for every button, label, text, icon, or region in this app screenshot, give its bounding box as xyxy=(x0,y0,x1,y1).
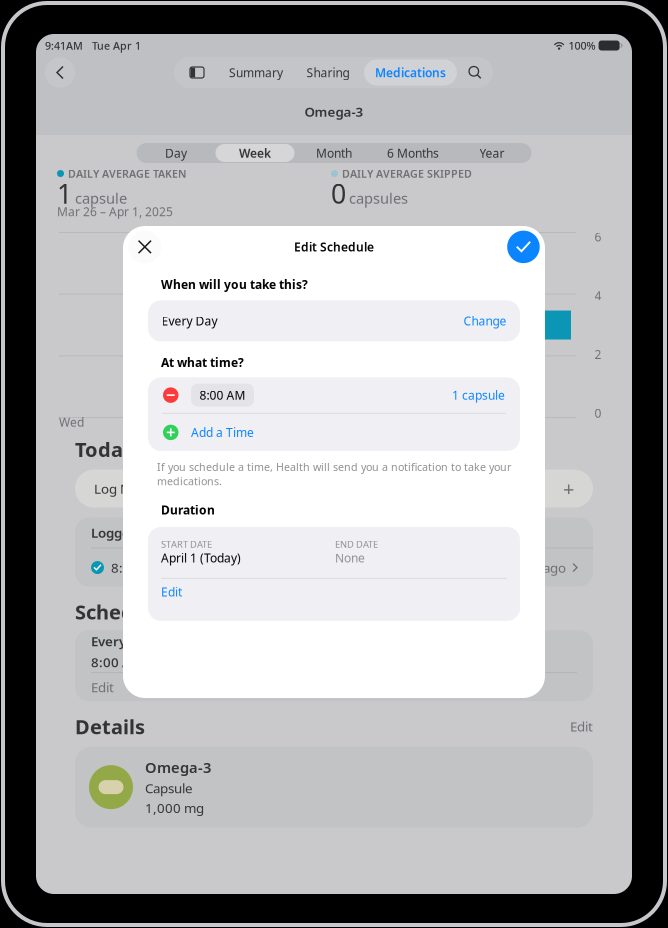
staticText: 1 capsule xyxy=(452,387,505,403)
staticText: + xyxy=(563,475,574,502)
staticText: Edit xyxy=(91,678,114,696)
button[interactable]: Week xyxy=(215,144,294,162)
button[interactable]: Month xyxy=(294,144,373,162)
staticText: 8:00 AM xyxy=(91,653,143,671)
staticText: When will you take this? xyxy=(161,276,308,292)
staticText: capsules xyxy=(349,188,408,208)
staticText: At what time? xyxy=(161,354,244,370)
staticText: 100% xyxy=(566,38,599,53)
staticText: Log New Medication xyxy=(94,480,218,497)
button[interactable]: Medications xyxy=(364,59,457,85)
staticText: Tue Apr 1 xyxy=(83,38,141,53)
staticText: Omega-3 xyxy=(304,103,363,120)
staticText: If you schedule a time, Health will send… xyxy=(157,460,511,488)
staticText: Capsule xyxy=(145,779,193,797)
staticText: Mar 26 – Apr 1, 2025 xyxy=(57,203,173,219)
staticText: April 1 (Today) xyxy=(161,550,241,566)
staticText: 1,000 mg xyxy=(145,799,204,817)
button[interactable]: Summary xyxy=(220,59,292,85)
staticText: Edit Schedule xyxy=(294,239,374,255)
staticText: 0 xyxy=(594,405,601,421)
staticText: Edit xyxy=(570,717,593,735)
button[interactable]: Sidebar xyxy=(174,59,220,85)
staticText: capsule xyxy=(75,188,127,208)
staticText: 1h ago xyxy=(524,559,566,576)
button[interactable]: Done xyxy=(507,231,540,263)
staticText: Schedule xyxy=(75,599,165,625)
staticText: 0 xyxy=(331,176,346,211)
staticText: START DATE xyxy=(161,538,212,550)
staticText: Omega-3 xyxy=(145,758,211,777)
staticText: Add a Time xyxy=(191,424,254,440)
staticText: 4 xyxy=(594,288,601,304)
staticText: END DATE xyxy=(335,538,378,550)
staticText: 6 Months xyxy=(387,145,439,161)
staticText: Every Day xyxy=(91,632,154,650)
button[interactable]: Sharing xyxy=(292,59,364,85)
staticText: Medications xyxy=(375,64,446,80)
button[interactable]: Remove time xyxy=(163,387,178,403)
staticText: Sharing xyxy=(306,64,349,80)
staticText: Details xyxy=(75,713,145,740)
button[interactable]: 8:00 AM xyxy=(191,384,254,407)
button[interactable]: Year xyxy=(452,144,531,162)
button[interactable]: Edit xyxy=(148,579,520,621)
button[interactable]: Close xyxy=(128,230,161,263)
staticText: Wed xyxy=(59,414,84,430)
staticText: Year xyxy=(479,145,504,161)
staticText: Edit xyxy=(161,584,182,600)
staticText: None xyxy=(335,550,365,566)
staticText: 2 xyxy=(594,346,601,362)
button[interactable]: Every Day xyxy=(148,300,520,341)
staticText: Week xyxy=(239,145,271,161)
staticText: 8:00 AM xyxy=(111,559,163,576)
staticText: Day xyxy=(165,145,187,161)
staticText: 8:00 AM xyxy=(199,387,245,403)
staticText: DAILY AVERAGE SKIPPED xyxy=(342,166,472,181)
staticText: Today's Log xyxy=(75,436,192,463)
staticText: 9:41AM xyxy=(45,38,83,53)
button[interactable]: 6 Months xyxy=(373,144,452,162)
button[interactable]: Search xyxy=(457,59,493,85)
staticText: DAILY AVERAGE TAKEN xyxy=(68,166,186,181)
staticText: Every Day xyxy=(161,313,217,329)
staticText: Change xyxy=(463,313,506,329)
staticText: 6 xyxy=(594,229,601,245)
staticText: Summary xyxy=(229,64,283,80)
staticText: Duration xyxy=(161,502,215,518)
staticText: Month xyxy=(316,145,352,161)
staticText: Logged xyxy=(91,524,138,541)
button[interactable]: Day xyxy=(136,144,215,162)
button[interactable]: Add a Time xyxy=(148,414,520,451)
button[interactable]: Back xyxy=(45,57,75,87)
staticText: 1 xyxy=(57,176,72,211)
